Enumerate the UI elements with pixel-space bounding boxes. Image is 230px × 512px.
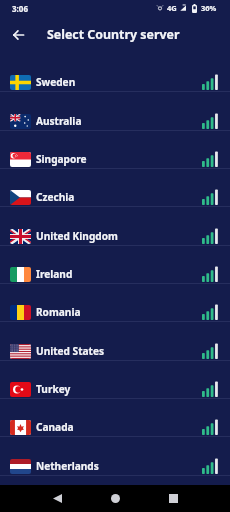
staticText: Romania xyxy=(36,305,81,319)
button[interactable]: Australia xyxy=(0,93,230,131)
button[interactable]: Back xyxy=(0,17,36,53)
staticText: Singapore xyxy=(36,152,87,166)
button[interactable]: United Kingdom xyxy=(0,208,230,246)
staticText: Australia xyxy=(36,114,82,128)
button[interactable]: Back xyxy=(40,485,74,512)
button[interactable]: Netherlands xyxy=(0,438,230,476)
staticText: 4G xyxy=(167,3,177,13)
button[interactable]: Canada xyxy=(0,399,230,437)
button[interactable]: Home xyxy=(98,485,132,512)
button[interactable]: Sweden xyxy=(0,54,230,92)
staticText: 3:06 xyxy=(12,3,28,14)
button[interactable]: Ireland xyxy=(0,246,230,284)
staticText: 36% xyxy=(201,3,217,13)
button[interactable]: Romania xyxy=(0,284,230,322)
button[interactable]: United States xyxy=(0,323,230,361)
staticText: Netherlands xyxy=(36,459,99,473)
staticText: Sweden xyxy=(36,75,76,89)
staticText: Canada xyxy=(36,420,74,434)
staticText: United Kingdom xyxy=(36,229,118,243)
staticText: Turkey xyxy=(36,382,71,396)
button[interactable]: Singapore xyxy=(0,131,230,169)
button[interactable]: Turkey xyxy=(0,361,230,399)
staticText: United States xyxy=(36,344,105,358)
staticText: Ireland xyxy=(36,267,73,281)
button[interactable]: Recents xyxy=(156,485,190,512)
staticText: Select Country server xyxy=(47,26,180,43)
staticText: Czechia xyxy=(36,190,75,204)
button[interactable]: Czechia xyxy=(0,169,230,207)
